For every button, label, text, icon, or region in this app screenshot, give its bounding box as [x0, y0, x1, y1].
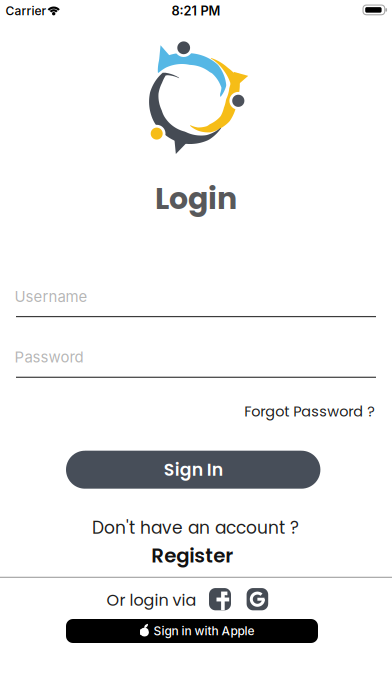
button[interactable]: Sign in with Apple — [66, 619, 318, 643]
button[interactable]: Register — [151, 542, 233, 569]
staticText: Forgot Password ? — [244, 401, 375, 421]
staticText: Or login via — [106, 589, 196, 611]
button[interactable]: Username — [16, 287, 376, 317]
staticText: Carrier — [5, 4, 46, 18]
staticText: Password — [14, 348, 83, 366]
staticText: Register — [151, 542, 233, 569]
staticText: Login — [155, 178, 237, 220]
button[interactable]: Password — [16, 348, 376, 378]
staticText: Sign In — [164, 458, 223, 482]
staticText: 8:21 PM — [171, 3, 220, 19]
staticText: Sign in with Apple — [154, 624, 255, 638]
button[interactable]: Sign in with Facebook — [209, 588, 231, 610]
staticText: Don't have an account ? — [92, 516, 299, 540]
staticText: Username — [14, 287, 87, 305]
button[interactable]: Sign in with Google — [247, 588, 268, 610]
button[interactable]: Sign In — [66, 451, 320, 489]
button[interactable]: Forgot Password ? — [244, 401, 375, 421]
